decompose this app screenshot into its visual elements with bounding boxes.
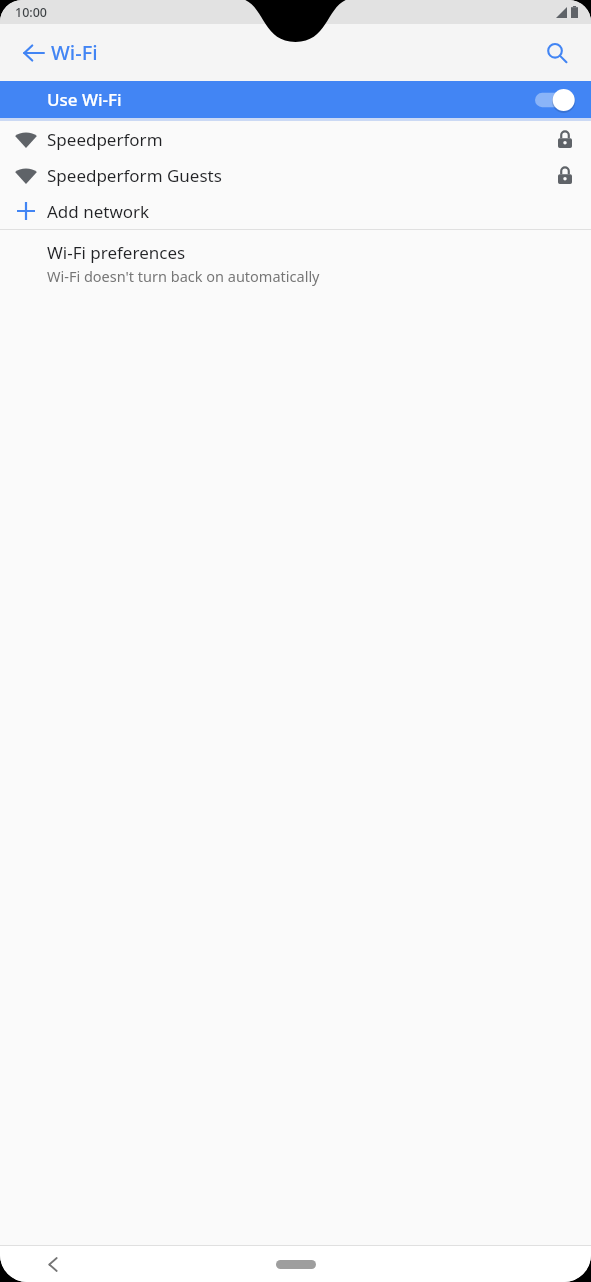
- staticText: Wi-Fi: [51, 39, 98, 66]
- button[interactable]: Add network: [0, 193, 591, 229]
- button[interactable]: Speedperform: [0, 121, 591, 157]
- staticText: Speedperform Guests: [47, 164, 222, 187]
- button[interactable]: Wi-Fi preferences: [0, 230, 591, 296]
- button[interactable]: Search: [533, 29, 581, 77]
- button[interactable]: Home: [270, 1253, 322, 1275]
- button[interactable]: Back: [33, 1246, 73, 1282]
- staticText: Wi-Fi preferences: [47, 241, 186, 264]
- staticText: Speedperform: [47, 128, 163, 151]
- staticText: 10:00: [15, 4, 48, 21]
- button[interactable]: Back: [10, 29, 58, 77]
- staticText: Add network: [47, 200, 150, 223]
- button[interactable]: Speedperform Guests: [0, 157, 591, 193]
- button[interactable]: Use Wi-Fi: [0, 81, 591, 118]
- staticText: Use Wi-Fi: [47, 88, 122, 111]
- staticText: Wi-Fi doesn't turn back on automatically: [47, 266, 320, 286]
